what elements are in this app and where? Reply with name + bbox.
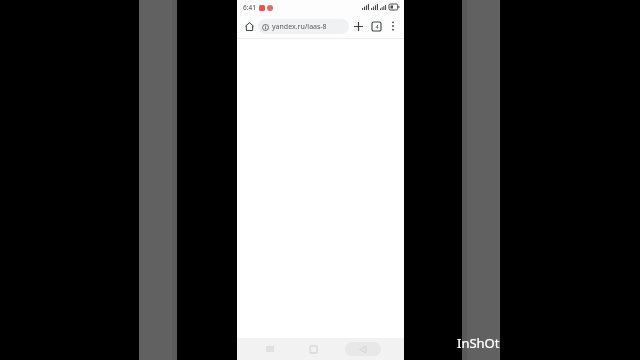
button[interactable]: More options: [385, 18, 401, 34]
button[interactable]: yandex.ru/laas-8: [258, 19, 349, 34]
button[interactable]: New tab: [349, 17, 367, 35]
staticText: 4: [375, 23, 379, 30]
staticText: yandex.ru/laas-8: [272, 22, 327, 32]
button[interactable]: Switch tabs, 4 open: [367, 17, 385, 35]
staticText: InShOt: [457, 334, 500, 352]
button[interactable]: Home: [240, 17, 258, 35]
button[interactable]: Back: [345, 342, 381, 356]
button[interactable]: Recent apps: [260, 340, 280, 358]
button[interactable]: Home: [303, 340, 323, 358]
staticText: 6:41: [243, 3, 256, 12]
